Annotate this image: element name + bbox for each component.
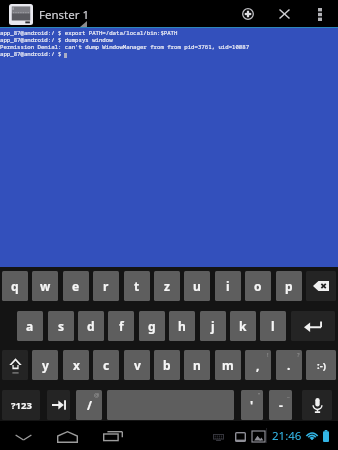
staticText: _ [287, 391, 290, 399]
button[interactable]: s [48, 311, 74, 341]
staticText: " [258, 391, 261, 399]
staticText: z [164, 278, 170, 294]
button[interactable]: Enter [291, 311, 335, 341]
button[interactable]: Hide keyboard [5, 421, 41, 450]
button[interactable]: x [63, 350, 89, 380]
button[interactable]: r [93, 271, 119, 301]
button[interactable]: m [215, 350, 241, 380]
staticText: t [134, 278, 140, 294]
button[interactable]: More options [306, 0, 334, 28]
staticText: m [222, 357, 234, 373]
staticText: ' [250, 397, 254, 413]
button[interactable]: o [245, 271, 271, 301]
staticText: h [178, 318, 186, 334]
button[interactable]: ' [241, 390, 263, 420]
button[interactable]: w [32, 271, 58, 301]
button[interactable]: k [230, 311, 256, 341]
staticText: r [103, 278, 109, 294]
button[interactable]: f [108, 311, 134, 341]
staticText: / [87, 397, 92, 413]
button[interactable]: , [245, 350, 271, 380]
button[interactable]: c [93, 350, 119, 380]
button[interactable]: p [276, 271, 302, 301]
button[interactable]: b [154, 350, 180, 380]
staticText: q [11, 278, 19, 294]
staticText: l [271, 318, 275, 334]
staticText: Permission Denial: can't dump WindowMana… [0, 43, 250, 51]
staticText: @ [94, 391, 100, 399]
staticText: d [87, 318, 95, 334]
staticText: - [279, 397, 283, 413]
staticText: b [163, 357, 171, 373]
button[interactable]: Home [49, 421, 86, 450]
staticText: app_87@android:/ $ dumpsys window [0, 36, 113, 44]
button[interactable]: i [215, 271, 241, 301]
button[interactable]: Delete [306, 271, 336, 301]
staticText: . [287, 357, 291, 373]
staticText: c [103, 357, 110, 373]
staticText: s [58, 318, 65, 334]
staticText: 21:46 [272, 428, 302, 444]
staticText: w [40, 278, 51, 294]
button[interactable]: z [154, 271, 180, 301]
button[interactable]: y [32, 350, 58, 380]
button[interactable]: g [139, 311, 165, 341]
staticText: ? [297, 351, 300, 359]
button[interactable]: . [276, 350, 302, 380]
button[interactable]: e [63, 271, 89, 301]
button[interactable]: ?123 [2, 390, 40, 420]
button[interactable]: a [17, 311, 43, 341]
button[interactable]: q [2, 271, 28, 301]
button[interactable]: Close window [268, 0, 300, 28]
staticText: u [193, 278, 201, 294]
button[interactable]: - [269, 390, 292, 420]
button[interactable]: Recent apps [95, 421, 131, 450]
button[interactable]: Shift [2, 350, 28, 380]
button[interactable]: :-) [306, 350, 336, 380]
button[interactable]: t [124, 271, 150, 301]
staticText: f [119, 318, 124, 334]
staticText: a [26, 318, 34, 334]
staticText: i [226, 278, 230, 294]
staticText: x [73, 357, 80, 373]
staticText: o [254, 278, 262, 294]
button[interactable]: h [169, 311, 195, 341]
button[interactable]: Tab [47, 390, 70, 420]
staticText: ! [267, 351, 269, 359]
button[interactable]: Keyboard [206, 421, 231, 450]
button[interactable]: n [184, 350, 210, 380]
staticText: app_87@android:/ $ [0, 50, 65, 58]
staticText: ?123 [11, 399, 32, 412]
button[interactable]: Voice input [302, 390, 332, 420]
staticText: y [42, 357, 49, 373]
staticText: v [134, 357, 141, 373]
staticText: n [193, 357, 201, 373]
button[interactable]: Screenshot [230, 421, 251, 450]
staticText: g [148, 318, 156, 334]
button[interactable]: / [76, 390, 102, 420]
button[interactable]: Gallery [248, 421, 269, 450]
button[interactable]: l [260, 311, 286, 341]
button[interactable]: d [78, 311, 104, 341]
button[interactable]: v [124, 350, 150, 380]
staticText: Fenster 1 [39, 7, 90, 23]
staticText: :-) [317, 359, 326, 372]
staticText: k [239, 318, 247, 334]
button[interactable]: Fenster 1 [0, 0, 338, 28]
staticText: p [285, 278, 293, 294]
staticText: j [211, 318, 215, 334]
button[interactable]: j [200, 311, 226, 341]
staticText: app_87@android:/ $ export PATH=/data/loc… [0, 29, 178, 37]
staticText: , [256, 357, 260, 373]
staticText: e [72, 278, 80, 294]
button[interactable]: u [184, 271, 210, 301]
button[interactable]: New window [230, 0, 266, 28]
